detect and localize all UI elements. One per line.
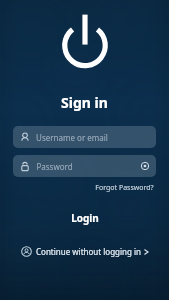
other: Show password <box>141 162 149 170</box>
button[interactable]: Username or email <box>13 126 156 148</box>
other: Power <box>63 13 107 67</box>
staticText: Password <box>36 161 73 172</box>
staticText: Username or email <box>36 132 108 143</box>
button[interactable]: Password <box>13 155 156 177</box>
button[interactable]: Forgot Password? <box>93 182 156 194</box>
button[interactable]: Continue without logging in <box>13 242 157 261</box>
button[interactable]: Login <box>49 206 121 230</box>
staticText: Continue without logging in <box>36 246 141 257</box>
staticText: Forgot Password? <box>95 183 154 193</box>
staticText: Login <box>71 211 99 225</box>
staticText: Sign in <box>61 93 108 112</box>
